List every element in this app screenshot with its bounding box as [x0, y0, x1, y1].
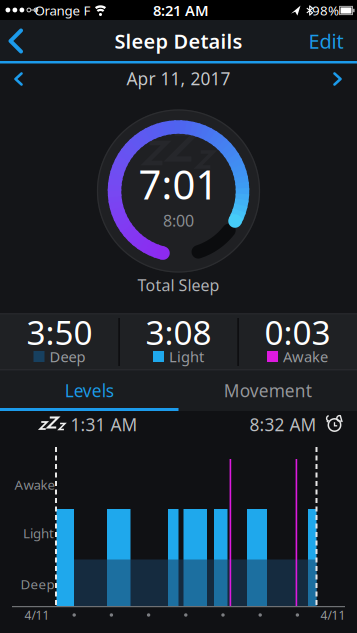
staticText: Awake — [14, 476, 55, 493]
staticText: Total Sleep — [137, 274, 219, 296]
staticText: Movement — [224, 379, 312, 402]
staticText: 8:32 AM — [249, 413, 316, 436]
staticText: 7:01 — [138, 157, 218, 210]
staticText: 3:50 — [26, 310, 92, 354]
staticText: 0:03 — [264, 310, 330, 354]
staticText: Edit — [308, 28, 343, 54]
button[interactable]: Previous day — [0, 63, 38, 94]
button[interactable]: Edit — [300, 20, 352, 62]
staticText: 98% — [312, 1, 339, 19]
button[interactable]: Back — [0, 20, 38, 62]
staticText: 8:21 AM — [153, 1, 209, 20]
staticText: Sleep Details — [114, 28, 242, 54]
staticText: Deep — [20, 575, 54, 593]
staticText: Levels — [65, 379, 114, 402]
button[interactable]: Movement — [178, 370, 357, 411]
staticText: Apr 11, 2017 — [126, 67, 230, 90]
staticText: Awake — [283, 347, 328, 366]
staticText: 1:31 AM — [70, 413, 137, 436]
button[interactable]: Next day — [319, 63, 357, 94]
staticText: Orange F — [34, 1, 90, 19]
staticText: 8:00 — [163, 210, 194, 231]
button[interactable]: Levels — [0, 370, 178, 411]
staticText: Light — [23, 524, 54, 542]
staticText: Light — [169, 347, 204, 366]
staticText: 4/11 — [320, 607, 345, 623]
staticText: 4/11 — [24, 607, 49, 623]
staticText: Deep — [49, 347, 85, 366]
staticText: 3:08 — [145, 310, 211, 354]
